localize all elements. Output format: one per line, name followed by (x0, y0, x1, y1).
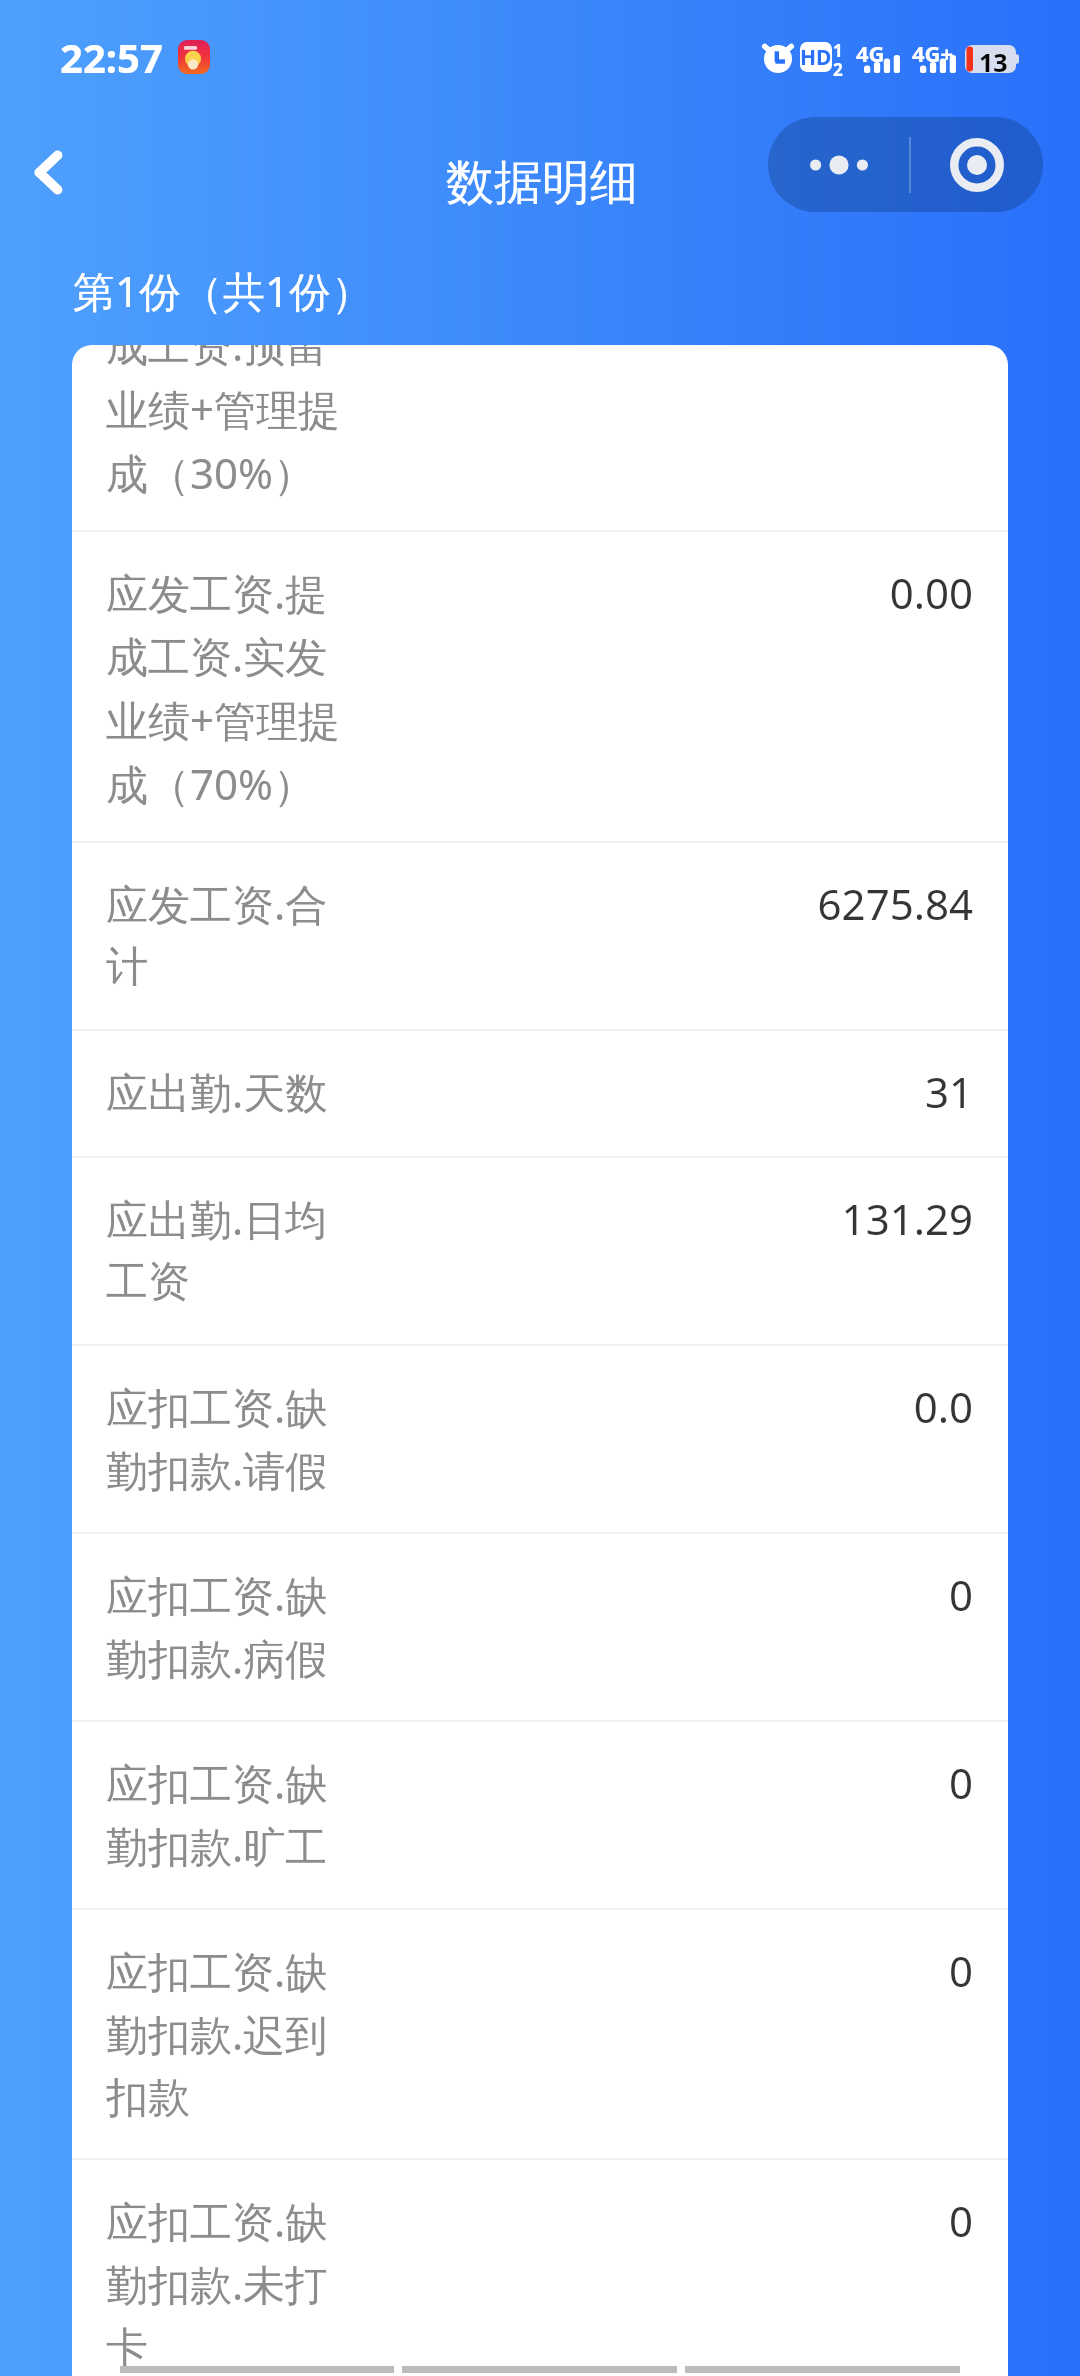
staticText: 0 (370, 1942, 973, 1999)
staticText: 应发工资.提成工资.预留业绩+管理提成（30%） (106, 345, 354, 502)
staticText: 13 (979, 45, 1008, 73)
staticText: 应发工资.提成工资.实发业绩+管理提成（70%） (106, 564, 354, 813)
staticText: 第1份（共1份） (73, 262, 374, 319)
staticText: 应出勤.日均工资 (106, 1190, 354, 1308)
button[interactable]: More (768, 117, 909, 212)
staticText: 1 (833, 39, 843, 62)
staticText: 应扣工资.缺勤扣款.病假 (106, 1566, 354, 1687)
staticText: 4G (856, 38, 885, 68)
staticText: 应扣工资.缺勤扣款.迟到扣款 (106, 1942, 354, 2124)
staticText: 4G+ (912, 38, 954, 68)
staticText: 0.0 (370, 1378, 973, 1435)
staticText: HD (800, 43, 832, 72)
staticText: 应扣工资.缺勤扣款.请假 (106, 1378, 354, 1499)
button[interactable]: 应扣工资.缺勤扣款.旷工 (72, 1722, 1008, 1908)
staticText: 0 (370, 2192, 973, 2249)
staticText: 131.29 (370, 1190, 973, 1247)
button[interactable]: Back (8, 122, 88, 222)
staticText: 2 (833, 58, 843, 81)
staticText: 应扣工资.缺勤扣款.未打卡 (106, 2192, 354, 2374)
staticText: 应扣工资.缺勤扣款.旷工 (106, 1754, 354, 1875)
staticText: 6275.84 (370, 875, 973, 932)
staticText: 0 (370, 1754, 973, 1811)
staticText: 应出勤.天数 (106, 1063, 328, 1120)
button[interactable]: Close mini program (911, 117, 1043, 212)
button[interactable]: 应扣工资.缺勤扣款.迟到扣款 (72, 1910, 1008, 2158)
button[interactable]: 应发工资.提成工资.实发业绩+管理提成（70%） (72, 532, 1008, 841)
staticText: 22:57 (60, 30, 163, 84)
button[interactable]: 应扣工资.缺勤扣款.请假 (72, 1346, 1008, 1532)
staticText: 31 (344, 1063, 973, 1120)
button[interactable]: 应扣工资.缺勤扣款.病假 (72, 1534, 1008, 1720)
button[interactable]: 应发工资.合计 (72, 843, 1008, 1029)
button[interactable]: 应出勤.天数 (72, 1031, 1008, 1156)
staticText: 0.00 (370, 564, 973, 621)
staticText: 0 (370, 1566, 973, 1623)
staticText: 应发工资.合计 (106, 875, 354, 993)
button[interactable]: 应出勤.日均工资 (72, 1158, 1008, 1344)
button[interactable]: 应扣工资.缺勤扣款.未打卡 (72, 2160, 1008, 2376)
staticText: 数据明细 (446, 153, 638, 213)
button[interactable]: 应发工资.提成工资.预留业绩+管理提成（30%） (72, 345, 1008, 530)
